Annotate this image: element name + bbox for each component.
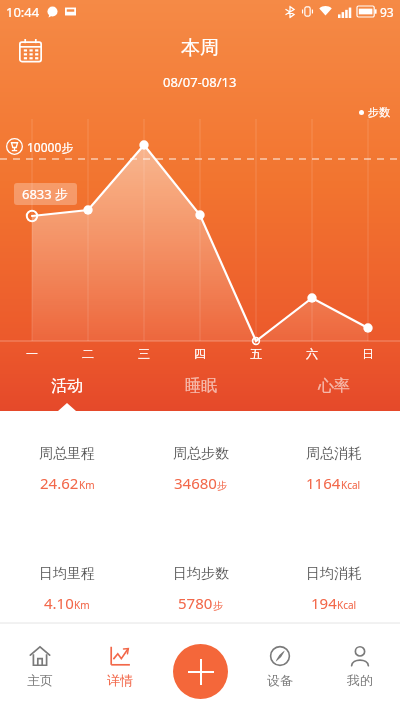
staticText: 93 — [380, 4, 394, 20]
staticText: 二 — [82, 346, 94, 361]
staticText: 主页 — [27, 672, 53, 688]
staticText: 五 — [250, 346, 262, 361]
staticText: 周总消耗 — [306, 445, 362, 463]
staticText: 步数 — [368, 105, 390, 119]
staticText: 设备 — [267, 672, 293, 688]
staticText: 心率 — [318, 376, 350, 396]
staticText: 周总步数 — [173, 445, 229, 463]
staticText: Kcal — [341, 478, 361, 492]
button[interactable]: 详情 — [80, 623, 160, 711]
staticText: 5780 — [178, 593, 213, 613]
button[interactable]: 周总里程 — [0, 445, 134, 493]
button[interactable]: Calendar — [12, 32, 48, 68]
staticText: 4.10 — [44, 593, 74, 613]
staticText: 详情 — [107, 672, 133, 688]
button[interactable]: 睡眠 — [134, 373, 267, 411]
staticText: 一 — [26, 346, 38, 361]
staticText: 10:44 — [6, 3, 40, 21]
button[interactable]: 周总消耗 — [267, 445, 400, 493]
button[interactable]: 活动 — [0, 373, 134, 411]
button[interactable]: 日均里程 — [0, 565, 134, 613]
staticText: Km — [74, 598, 90, 612]
button[interactable]: 设备 — [240, 623, 320, 711]
staticText: 我的 — [347, 672, 373, 688]
staticText: 三 — [138, 346, 150, 361]
staticText: 1164 — [306, 473, 341, 493]
staticText: 10000步 — [27, 139, 74, 155]
staticText: 步 — [213, 599, 223, 612]
staticText: 34680 — [174, 473, 217, 493]
staticText: 08/07-08/13 — [163, 73, 237, 91]
staticText: 六 — [306, 346, 318, 361]
staticText: 睡眠 — [185, 376, 217, 396]
staticText: Km — [79, 478, 95, 492]
button[interactable]: 主页 — [0, 623, 80, 711]
staticText: 194 — [311, 593, 337, 613]
staticText: 步 — [217, 479, 227, 492]
staticText: 日均消耗 — [306, 565, 362, 583]
button[interactable]: 心率 — [267, 373, 400, 411]
staticText: 本周 — [181, 36, 219, 60]
staticText: 日均里程 — [39, 565, 95, 583]
staticText: 日 — [362, 346, 374, 361]
button[interactable]: 周总步数 — [134, 445, 267, 493]
button[interactable]: 我的 — [320, 623, 400, 711]
staticText: 周总里程 — [39, 445, 95, 463]
button[interactable]: 日均消耗 — [267, 565, 400, 613]
staticText: 6833 步 — [22, 185, 69, 203]
button[interactable]: Add — [173, 644, 228, 699]
staticText: Kcal — [337, 598, 357, 612]
staticText: 四 — [194, 346, 206, 361]
staticText: 日均步数 — [173, 565, 229, 583]
staticText: 24.62 — [40, 473, 79, 493]
staticText: 活动 — [51, 376, 83, 396]
button[interactable]: 日均步数 — [134, 565, 267, 613]
